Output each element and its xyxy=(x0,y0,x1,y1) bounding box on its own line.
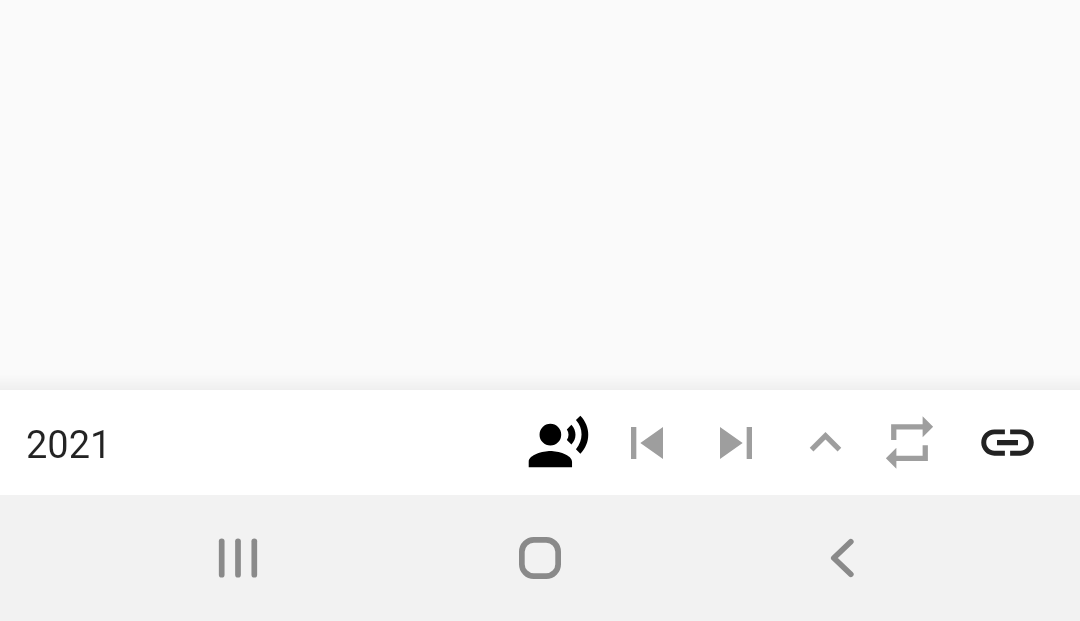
button[interactable]: Repeat xyxy=(878,411,941,474)
button[interactable]: Next track xyxy=(704,411,768,475)
button[interactable]: Home xyxy=(492,510,588,606)
button[interactable]: Back xyxy=(794,510,890,606)
button[interactable]: Recent apps xyxy=(190,510,286,606)
button[interactable]: Voice over xyxy=(526,413,591,478)
staticText: 2021 xyxy=(26,423,112,468)
button[interactable]: Previous track xyxy=(615,411,679,475)
button[interactable]: Expand xyxy=(794,411,857,474)
button[interactable]: Copy link xyxy=(976,411,1039,474)
